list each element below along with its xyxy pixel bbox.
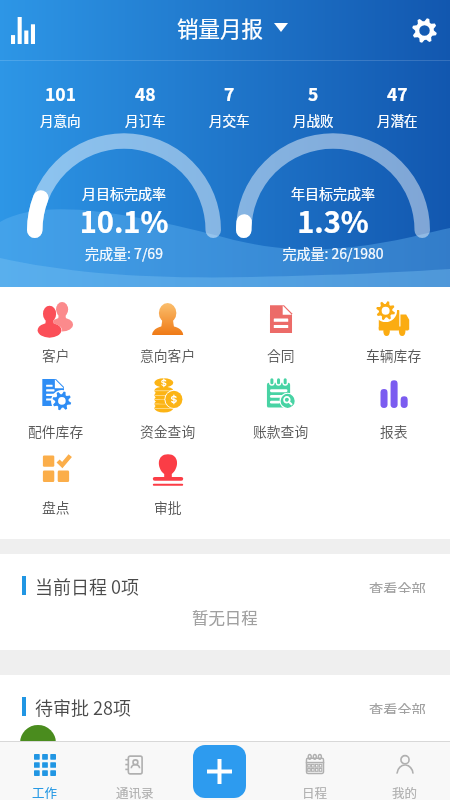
staticText: 完成量: 7/69 bbox=[29, 243, 219, 263]
staticText: 当前日程 0项 bbox=[35, 573, 140, 599]
staticText: 车辆库存 bbox=[366, 345, 422, 365]
staticText: 月交车 bbox=[209, 110, 250, 130]
staticText: 日程 bbox=[302, 783, 328, 800]
button[interactable]: 查看全部 bbox=[362, 692, 433, 721]
button[interactable]: 5 bbox=[271, 81, 355, 130]
staticText: 查看全部 bbox=[369, 699, 426, 714]
button[interactable]: 账款查询 bbox=[224, 370, 337, 446]
staticText: 101 bbox=[45, 81, 76, 106]
staticText: 报表 bbox=[380, 421, 408, 441]
staticText: 查看全部 bbox=[369, 578, 426, 593]
button[interactable]: Reports bbox=[0, 7, 46, 53]
staticText: 审批 bbox=[154, 497, 182, 517]
staticText: 月意向 bbox=[40, 110, 81, 130]
button[interactable]: 资金查询 bbox=[112, 370, 224, 446]
staticText: 配件库存 bbox=[28, 421, 84, 441]
button[interactable]: 48 bbox=[103, 81, 187, 130]
button[interactable]: 销量月报 bbox=[171, 8, 294, 47]
staticText: 资金查询 bbox=[140, 421, 196, 441]
button[interactable]: 7 bbox=[187, 81, 271, 130]
staticText: 月目标完成率 bbox=[29, 183, 219, 203]
staticText: 待审批 28项 bbox=[35, 694, 132, 720]
staticText: 月潜在 bbox=[377, 110, 418, 130]
button[interactable]: 客户 bbox=[0, 294, 112, 370]
button[interactable]: Settings bbox=[402, 8, 446, 52]
staticText: 合同 bbox=[267, 345, 295, 365]
button[interactable]: 盘点 bbox=[0, 446, 112, 522]
button[interactable]: 合同 bbox=[224, 294, 337, 370]
staticText: 工作 bbox=[32, 783, 58, 800]
staticText: 7 bbox=[224, 81, 235, 106]
staticText: 月战败 bbox=[293, 110, 334, 130]
staticText: 暂无日程 bbox=[192, 605, 258, 629]
staticText: 48 bbox=[135, 81, 156, 106]
button[interactable]: 报表 bbox=[337, 370, 450, 446]
staticText: 年目标完成率 bbox=[238, 183, 428, 203]
staticText: 1.3% bbox=[238, 199, 428, 241]
staticText: 完成量: 26/1980 bbox=[238, 243, 428, 263]
staticText: 客户 bbox=[42, 345, 70, 365]
button[interactable]: Add bbox=[193, 745, 246, 798]
button[interactable]: 我的 bbox=[360, 742, 450, 800]
button[interactable]: 101 bbox=[18, 81, 103, 130]
staticText: 销量月报 bbox=[177, 12, 264, 43]
staticText: 通讯录 bbox=[116, 783, 154, 800]
button[interactable]: 通讯录 bbox=[90, 742, 180, 800]
button[interactable] bbox=[0, 721, 450, 791]
staticText: 盘点 bbox=[42, 497, 70, 517]
button[interactable]: 车辆库存 bbox=[337, 294, 450, 370]
button[interactable]: 意向客户 bbox=[112, 294, 224, 370]
staticText: 月订车 bbox=[125, 110, 166, 130]
button[interactable]: 47 bbox=[355, 81, 439, 130]
staticText: 我的 bbox=[392, 783, 418, 800]
staticText: 意向客户 bbox=[140, 345, 196, 365]
staticText: 47 bbox=[387, 81, 408, 106]
button[interactable]: 审批 bbox=[112, 446, 224, 522]
staticText: 10.1% bbox=[29, 199, 219, 241]
button[interactable]: 工作 bbox=[0, 742, 90, 800]
button[interactable]: 日程 bbox=[270, 742, 360, 800]
button[interactable]: 配件库存 bbox=[0, 370, 112, 446]
staticText: 5 bbox=[308, 81, 319, 106]
staticText: 账款查询 bbox=[253, 421, 309, 441]
button[interactable]: 查看全部 bbox=[362, 571, 433, 600]
